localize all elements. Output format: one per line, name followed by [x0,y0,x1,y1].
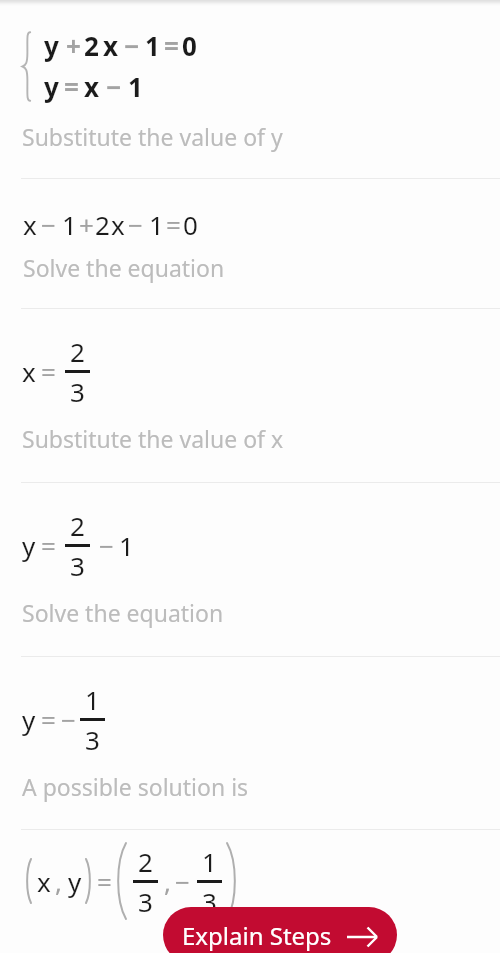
staticText: Solve the equation [22,597,224,628]
button[interactable]: y [0,483,500,656]
staticText: − [128,207,143,242]
staticText: x [37,864,51,899]
button[interactable]: x [0,309,500,482]
staticText: 1 [62,207,77,242]
staticText: 3 [70,548,85,583]
staticText: y [22,528,36,563]
staticText: − [99,528,114,563]
staticText: − [175,864,190,899]
staticText: − [41,207,56,242]
staticText: 1 [149,207,164,242]
staticText: = [41,354,56,389]
staticText: Solve the equation [23,252,225,283]
staticText: x [22,354,36,389]
staticText: = [41,702,56,737]
staticText: 0 [182,28,197,63]
staticText: x [103,28,119,63]
button[interactable]: x [0,830,500,920]
staticText: 0 [183,207,198,242]
staticText: 3 [70,374,85,409]
staticText: 2 [138,844,153,879]
staticText: y [68,864,82,899]
button[interactable]: Explain Steps [163,907,397,953]
staticText: 2 [70,334,85,369]
staticText: = [64,69,79,104]
staticText: − [61,702,76,737]
staticText: , [55,864,62,899]
staticText: x [23,207,37,242]
staticText: 3 [202,884,217,919]
staticText: − [124,28,140,63]
staticText: = [97,864,112,899]
other: Explain Steps [347,925,378,947]
staticText: A possible solution is [22,771,249,802]
staticText: + [66,28,81,63]
staticText: = [166,207,181,242]
staticText: = [164,28,179,63]
staticText: + [79,207,94,242]
staticText: y [44,69,59,104]
staticText: 1 [202,844,217,879]
staticText: 2 [84,28,99,63]
staticText: 1 [145,28,160,63]
staticText: y [22,702,36,737]
staticText: y [44,28,59,63]
staticText: Substitute the value of x [22,423,284,454]
staticText: − [106,69,122,104]
button[interactable]: x [0,179,500,308]
staticText: Substitute the value of y [22,121,283,152]
staticText: 1 [128,69,143,104]
button[interactable]: y [0,657,500,829]
staticText: , [164,864,171,899]
staticText: x [84,69,100,104]
staticText: 3 [138,884,153,919]
staticText: 3 [85,722,100,757]
button[interactable]: y [0,6,500,178]
staticText: 2 [70,508,85,543]
staticText: = [41,528,56,563]
staticText: 1 [119,528,134,563]
staticText: 1 [85,682,100,717]
staticText: Explain Steps [182,919,332,952]
staticText: 2 [95,207,110,242]
staticText: x [111,207,125,242]
